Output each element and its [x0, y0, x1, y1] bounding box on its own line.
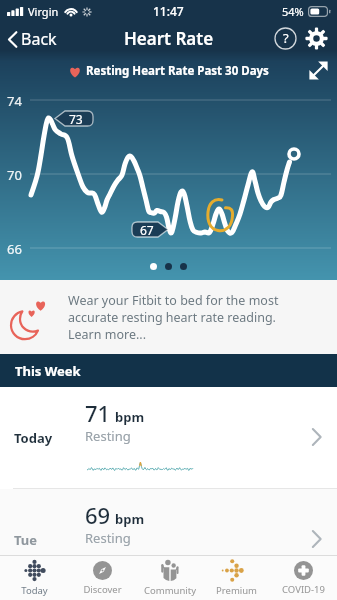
staticText: Today [21, 584, 48, 597]
staticText: 66 [7, 240, 22, 258]
staticText: bpm [115, 510, 145, 528]
button[interactable]: Today [0, 387, 337, 489]
staticText: Today [14, 429, 53, 447]
staticText: Resting [85, 427, 131, 445]
button[interactable]: COVID-19 [270, 556, 337, 600]
staticText: bpm [115, 408, 145, 426]
button[interactable]: Expand chart [309, 61, 328, 80]
staticText: 70 [7, 166, 22, 184]
button[interactable]: Back [0, 23, 67, 55]
staticText: 71 [85, 398, 111, 428]
button[interactable]: Settings [305, 27, 328, 50]
staticText: Discover [83, 583, 122, 596]
staticText: 11:47 [153, 3, 184, 19]
staticText: 74 [7, 92, 22, 110]
staticText: Resting [85, 529, 131, 547]
staticText: COVID-19 [282, 583, 325, 596]
staticText: Heart Rate [124, 27, 214, 50]
staticText: Back [21, 28, 57, 50]
button[interactable]: Help [274, 27, 297, 50]
staticText: Premium [216, 584, 257, 597]
staticText: 73 [69, 111, 83, 127]
staticText: Virgin [28, 4, 59, 19]
staticText: Community [144, 584, 196, 597]
button[interactable]: Today [0, 556, 68, 600]
staticText: Tue [14, 531, 38, 549]
button[interactable]: Learn more... [68, 326, 147, 343]
staticText: Resting Heart Rate Past 30 Days [86, 63, 269, 79]
button[interactable]: Tue [0, 489, 337, 591]
staticText: 67 [140, 222, 154, 238]
button[interactable]: Community [136, 556, 203, 600]
staticText: ? [283, 29, 289, 47]
button[interactable]: Premium [203, 556, 270, 600]
staticText: 54% [282, 4, 304, 19]
staticText: This Week [15, 362, 81, 380]
button[interactable]: Discover [68, 556, 136, 600]
staticText: accurate resting heart rate reading. [68, 309, 276, 326]
staticText: Wear your Fitbit to bed for the most [68, 292, 279, 309]
staticText: 69 [85, 500, 111, 530]
